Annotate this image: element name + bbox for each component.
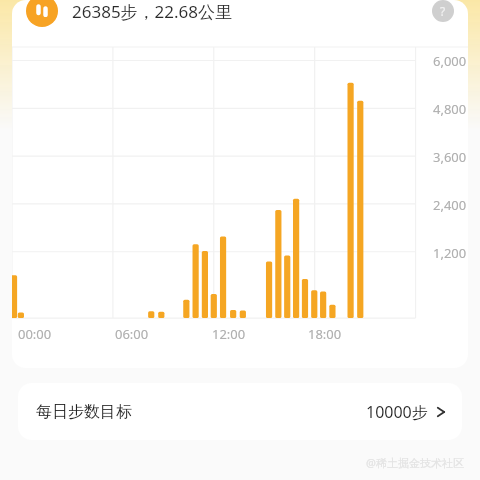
staticText: 12:00 <box>212 325 246 343</box>
staticText: 1,200 <box>433 244 467 262</box>
staticText: 06:00 <box>115 325 149 343</box>
staticText: 每日步数目标 <box>36 402 132 422</box>
staticText: 3,600 <box>433 148 467 166</box>
button[interactable]: 每日步数目标 <box>18 383 462 440</box>
staticText: 26385步，22.68公里 <box>72 0 233 23</box>
staticText: ? <box>440 3 446 19</box>
staticText: 10000步 <box>366 401 428 423</box>
staticText: 4,800 <box>433 100 467 118</box>
staticText: 6,000 <box>433 52 467 70</box>
staticText: @稀土掘金技术社区 <box>366 455 464 470</box>
staticText: 18:00 <box>308 325 342 343</box>
staticText: 00:00 <box>18 325 52 343</box>
button[interactable]: 帮助 <box>432 0 454 22</box>
staticText: 2,400 <box>433 196 467 214</box>
